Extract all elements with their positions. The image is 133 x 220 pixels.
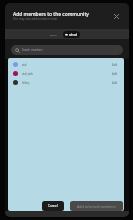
staticText: You may also add members later	[13, 17, 58, 21]
staticText: school	[69, 33, 78, 37]
button[interactable]: Cancel	[42, 201, 64, 211]
staticText: hillary	[22, 81, 30, 85]
button[interactable]: atal_web	[8, 69, 124, 78]
button[interactable]: hillary	[8, 78, 124, 87]
button[interactable]: Add selected members	[70, 201, 123, 211]
button[interactable]: school	[63, 31, 80, 38]
staticText: atal_web	[22, 72, 33, 76]
staticText: Add members to the community	[13, 11, 89, 18]
staticText: atal	[22, 63, 27, 67]
staticText: Add selected members	[77, 204, 116, 209]
staticText: Cancel	[48, 204, 58, 208]
staticText: Add	[112, 63, 118, 67]
staticText: Add	[112, 72, 118, 76]
button[interactable]: atal	[8, 60, 124, 69]
staticText: within	[50, 33, 57, 36]
button[interactable]: Close	[109, 9, 124, 24]
button[interactable]: Search members	[11, 45, 123, 55]
staticText: Search members	[22, 48, 43, 52]
staticText: Add	[112, 81, 118, 85]
